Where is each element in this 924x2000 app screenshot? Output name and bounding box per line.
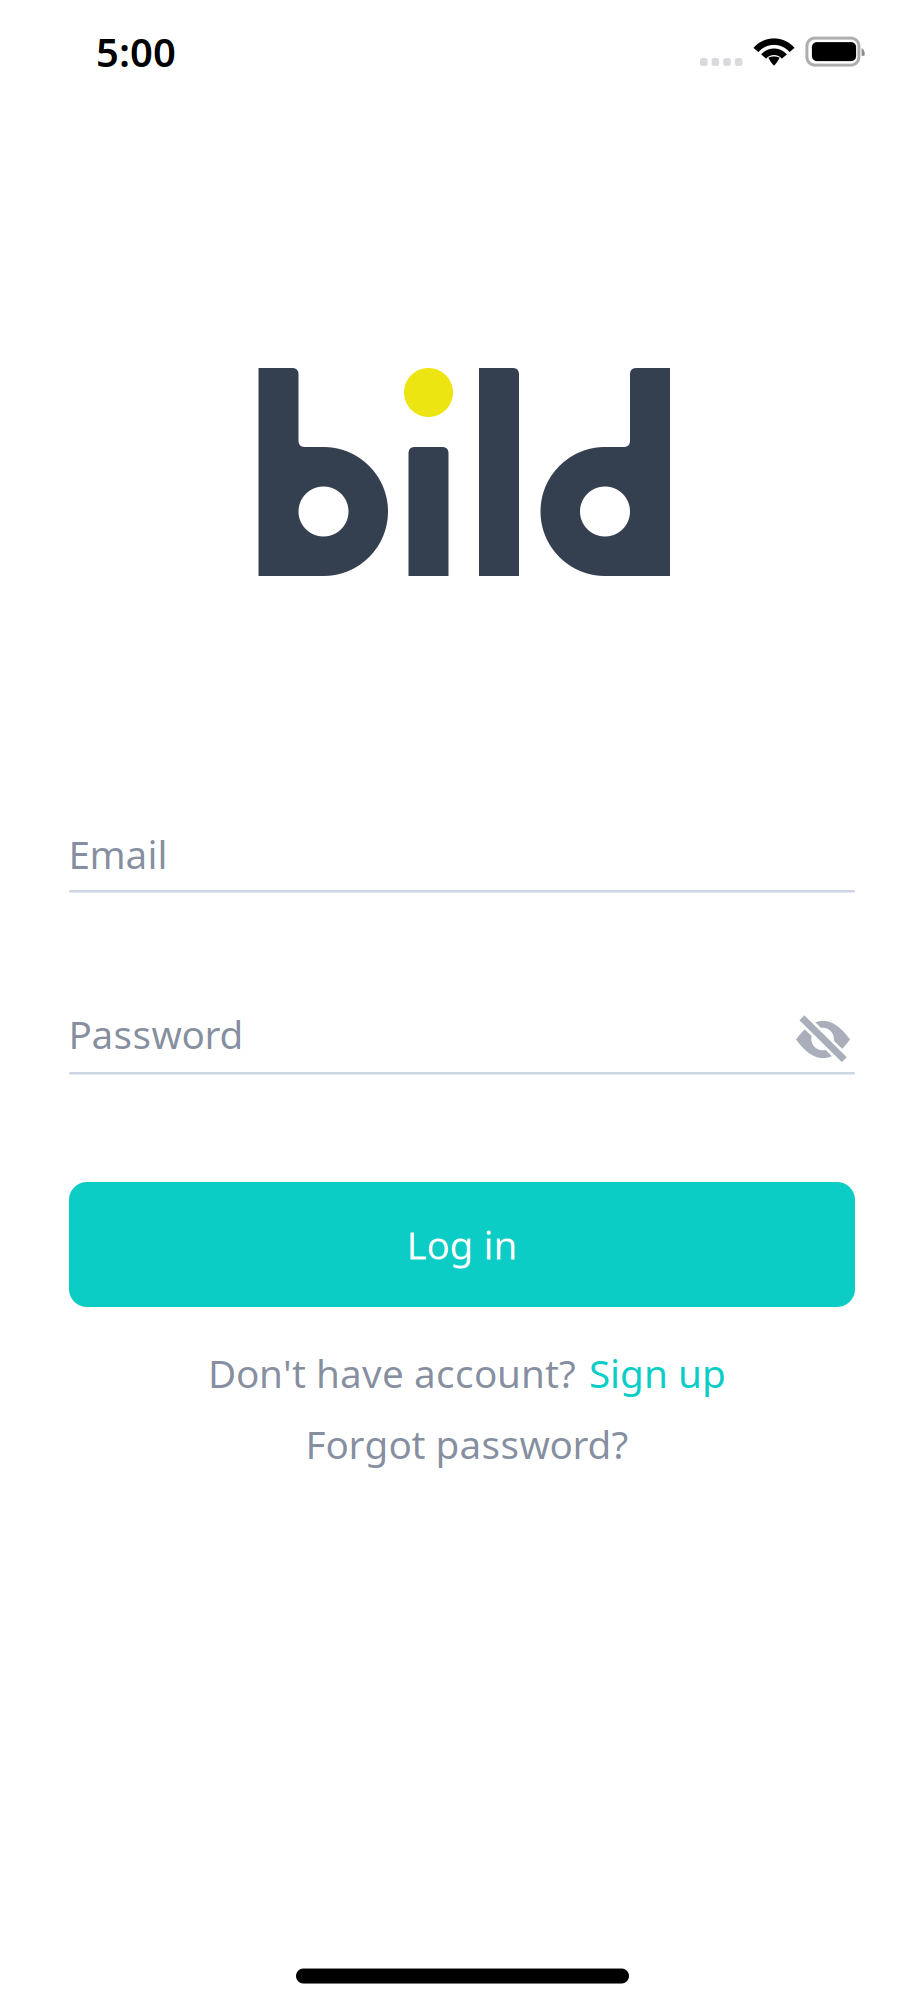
staticText: Don't have account?: [208, 1347, 576, 1399]
staticText: Log in: [406, 1219, 517, 1270]
staticText: Email: [68, 828, 167, 880]
staticText: Password: [68, 1008, 243, 1060]
button[interactable]: Log in: [69, 1182, 855, 1307]
button[interactable]: Sign up: [589, 1343, 726, 1403]
button[interactable]: Show password: [779, 1002, 867, 1076]
button[interactable]: Email: [68, 824, 854, 884]
staticText: Sign up: [589, 1347, 726, 1399]
staticText: 5:00: [96, 25, 176, 78]
staticText: Forgot password?: [305, 1418, 628, 1470]
button[interactable]: Forgot password?: [305, 1414, 628, 1474]
button[interactable]: Password: [68, 1004, 754, 1064]
